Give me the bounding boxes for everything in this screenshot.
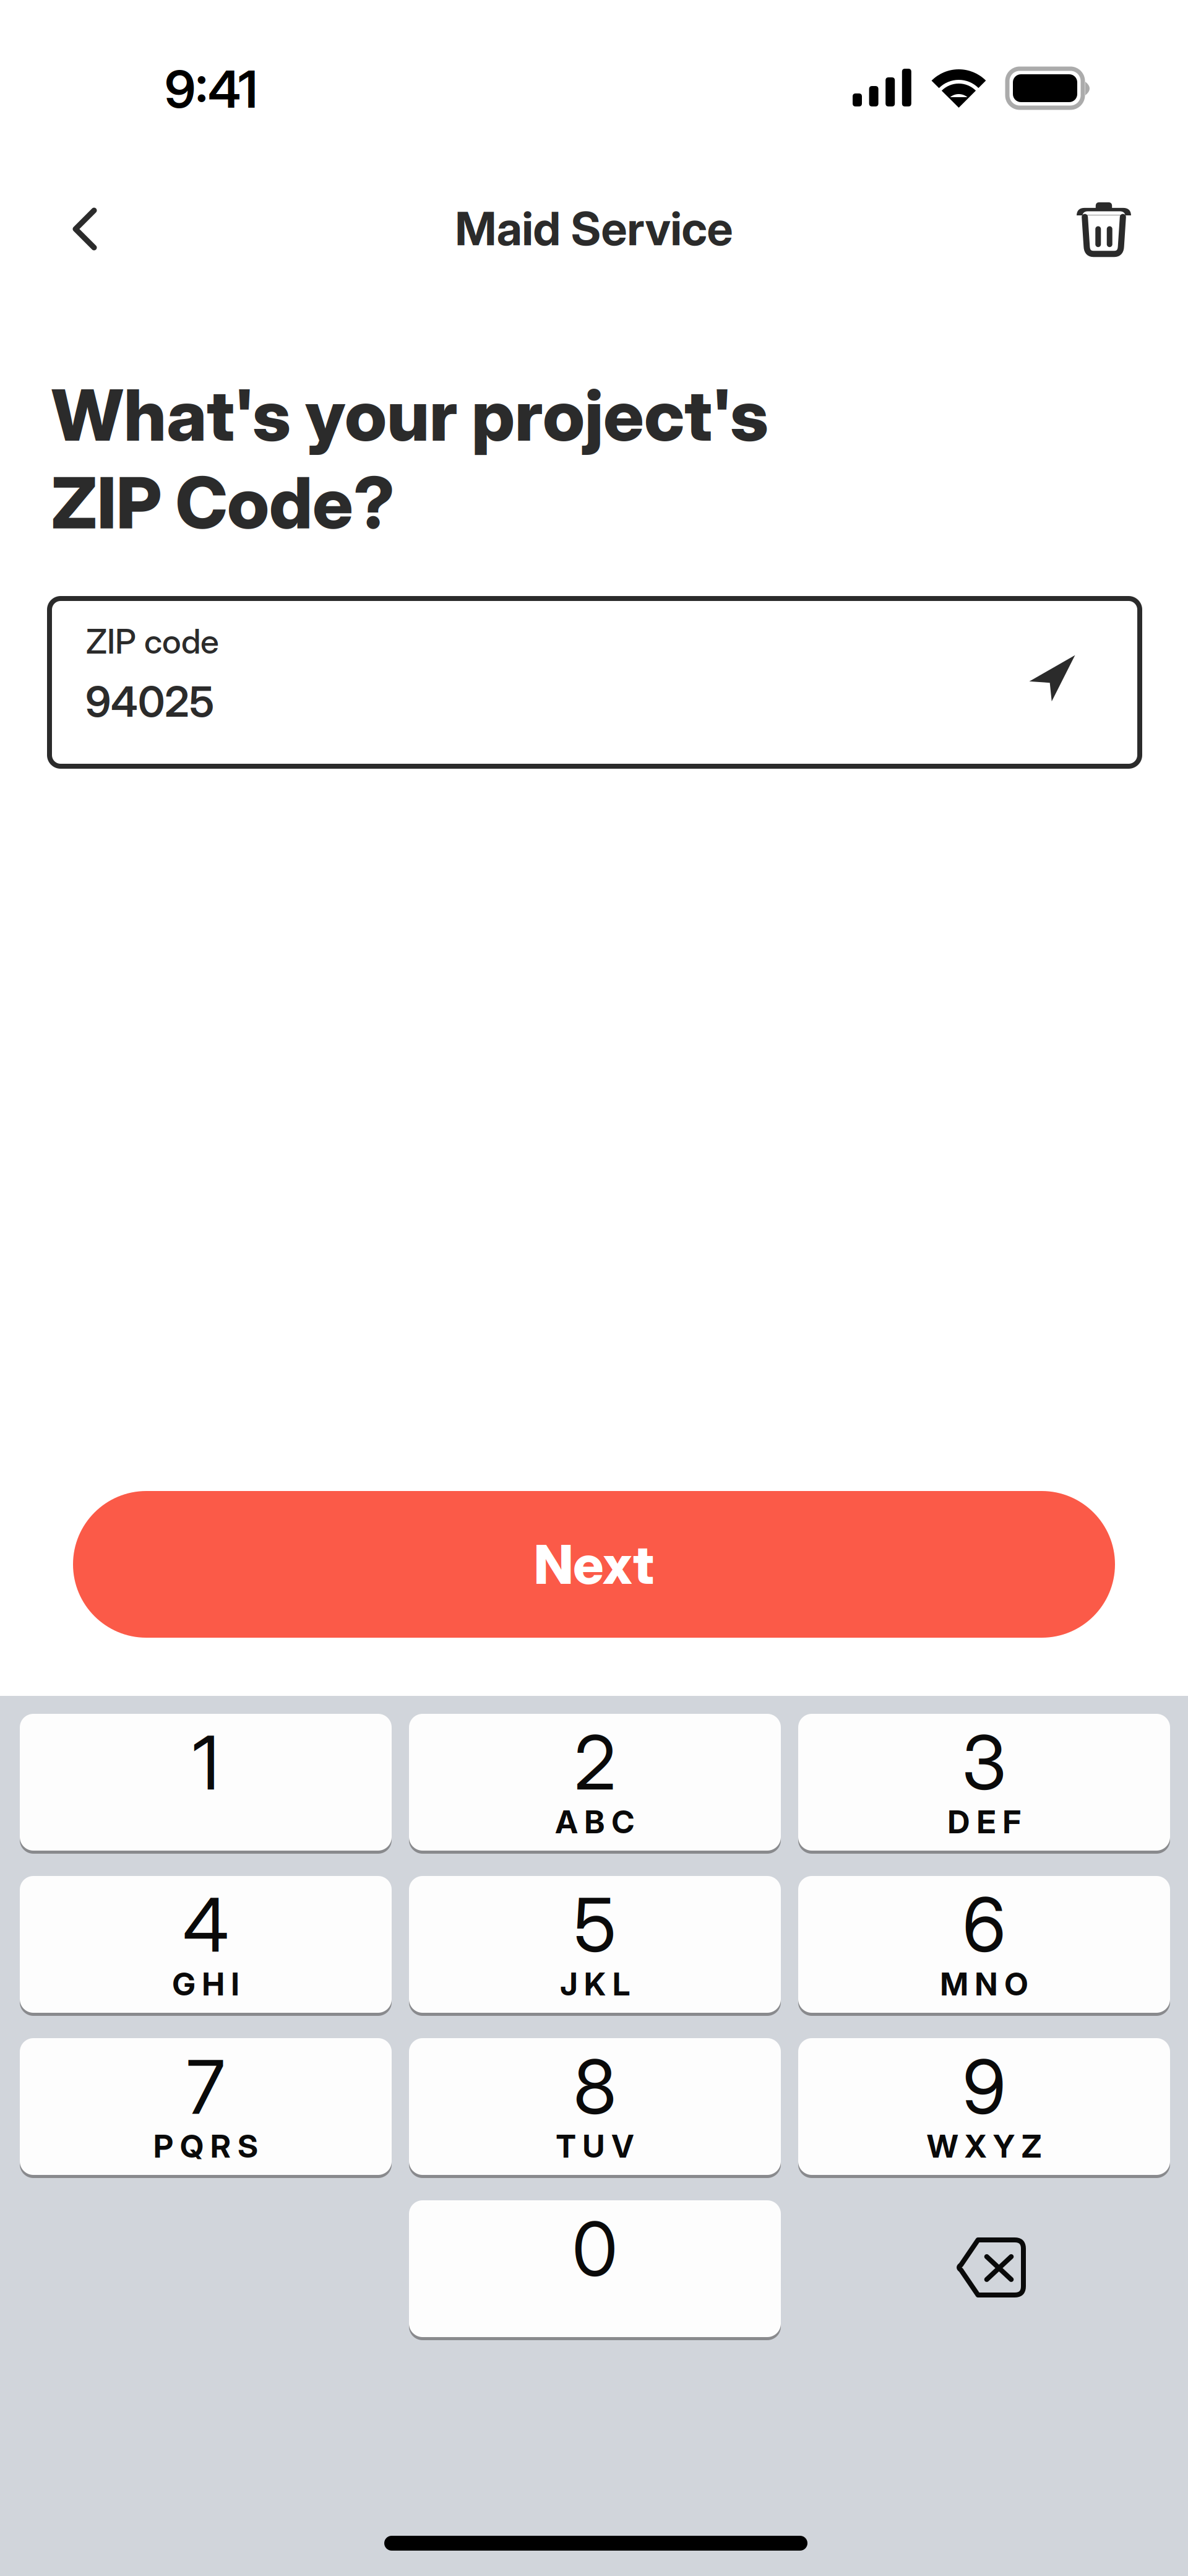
staticText: A B C bbox=[555, 1803, 635, 1841]
staticText: 9 bbox=[962, 2042, 1006, 2132]
button[interactable]: 9 bbox=[798, 2038, 1170, 2175]
staticText: What's your project's bbox=[51, 372, 768, 458]
button[interactable]: 3 bbox=[798, 1714, 1170, 1851]
button[interactable]: ZIP code bbox=[49, 599, 1140, 766]
staticText: 4 bbox=[183, 1880, 229, 1970]
staticText: J K L bbox=[560, 1965, 630, 2003]
staticText: 2 bbox=[574, 1718, 616, 1807]
staticText: W X Y Z bbox=[927, 2127, 1041, 2165]
staticText: 1 bbox=[192, 1718, 219, 1807]
button[interactable]: 6 bbox=[798, 1876, 1170, 2013]
staticText: 8 bbox=[573, 2042, 617, 2132]
button[interactable]: 0 bbox=[409, 2200, 781, 2337]
staticText: ZIP code bbox=[86, 621, 219, 662]
button[interactable]: 5 bbox=[409, 1876, 781, 2013]
staticText: 3 bbox=[962, 1718, 1006, 1807]
staticText: 0 bbox=[572, 2204, 618, 2294]
staticText: P Q R S bbox=[153, 2127, 258, 2165]
staticText: G H I bbox=[172, 1965, 239, 2003]
staticText: 5 bbox=[574, 1880, 616, 1970]
staticText: 6 bbox=[962, 1880, 1006, 1970]
staticText: T U V bbox=[556, 2127, 634, 2165]
button[interactable]: Back bbox=[45, 189, 125, 269]
button[interactable]: Delete bbox=[798, 2200, 1170, 2337]
staticText: 94025 bbox=[85, 676, 214, 727]
button[interactable]: Delete project bbox=[1064, 189, 1144, 269]
staticText: Next bbox=[534, 1532, 654, 1597]
button[interactable]: 8 bbox=[409, 2038, 781, 2175]
staticText: ZIP Code? bbox=[51, 460, 395, 546]
staticText: D E F bbox=[948, 1803, 1021, 1841]
staticText: Maid Service bbox=[455, 201, 733, 256]
staticText: 9:41 bbox=[165, 58, 257, 120]
button[interactable]: 4 bbox=[20, 1876, 392, 2013]
button[interactable]: Next bbox=[73, 1491, 1115, 1638]
button[interactable]: 7 bbox=[20, 2038, 392, 2175]
staticText: 7 bbox=[187, 2042, 225, 2132]
button[interactable]: 1 bbox=[20, 1714, 392, 1851]
staticText: M N O bbox=[940, 1965, 1028, 2003]
button[interactable]: 2 bbox=[409, 1714, 781, 1851]
